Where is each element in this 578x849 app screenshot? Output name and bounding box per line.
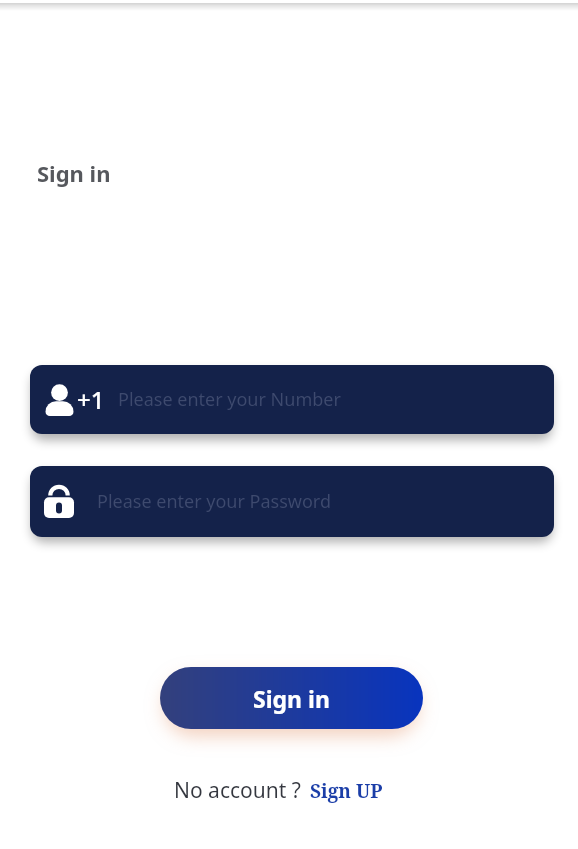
staticText: Please enter your Password xyxy=(97,489,331,514)
button[interactable]: Sign in xyxy=(160,667,423,729)
staticText: +1 xyxy=(77,383,105,416)
button[interactable]: Please enter your Password xyxy=(30,466,554,537)
staticText: Sign in xyxy=(253,683,330,714)
button[interactable]: Sign UP xyxy=(310,778,383,804)
staticText: Please enter your Number xyxy=(118,387,341,412)
button[interactable]: +1 xyxy=(30,365,554,434)
staticText: No account ? xyxy=(174,776,301,805)
staticText: Sign in xyxy=(37,158,111,188)
